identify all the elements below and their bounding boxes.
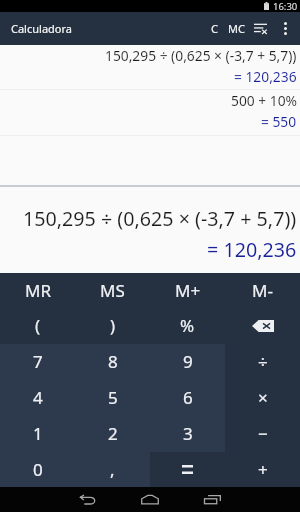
staticText: × bbox=[258, 386, 268, 409]
button[interactable]: 6 bbox=[150, 379, 225, 415]
staticText: M+ bbox=[175, 279, 201, 302]
button[interactable]: , bbox=[75, 451, 150, 487]
button[interactable]: 8 bbox=[75, 343, 150, 379]
button[interactable]: M- bbox=[225, 273, 300, 308]
button[interactable]: 9 bbox=[150, 343, 225, 379]
button[interactable]: 150,295 ÷ (0,625 × (-3,7 + 5,7)) bbox=[0, 45, 300, 89]
staticText: MC bbox=[228, 21, 245, 36]
button[interactable]: 3 bbox=[150, 415, 225, 451]
staticText: MS bbox=[100, 279, 125, 302]
staticText: = 550 bbox=[261, 112, 297, 131]
staticText: 6 bbox=[183, 386, 193, 409]
staticText: 5 bbox=[108, 386, 118, 409]
button[interactable]: % bbox=[150, 308, 225, 343]
button[interactable]: 1 bbox=[0, 415, 75, 451]
staticText: 2 bbox=[108, 422, 118, 445]
button[interactable]: ) bbox=[75, 308, 150, 343]
button[interactable]: ( bbox=[0, 308, 75, 343]
staticText: 0 bbox=[33, 458, 43, 481]
button[interactable]: Back bbox=[57, 487, 119, 512]
staticText: , bbox=[110, 458, 115, 481]
staticText: ( bbox=[35, 314, 41, 337]
staticText: 16:30 bbox=[273, 0, 298, 12]
staticText: 150,295 ÷ (0,625 × (-3,7 + 5,7)) bbox=[105, 46, 297, 65]
button[interactable]: Recents bbox=[181, 487, 243, 512]
staticText: 4 bbox=[33, 386, 43, 409]
button[interactable]: MS bbox=[75, 273, 150, 308]
button[interactable]: Home bbox=[119, 487, 181, 512]
button[interactable]: MC bbox=[224, 12, 248, 45]
button[interactable]: MR bbox=[0, 273, 75, 308]
staticText: 9 bbox=[183, 350, 193, 373]
staticText: 500 + 10% bbox=[231, 91, 297, 110]
button[interactable]: 4 bbox=[0, 379, 75, 415]
staticText: MR bbox=[25, 279, 51, 302]
button[interactable] bbox=[150, 451, 225, 487]
staticText: ÷ bbox=[258, 350, 268, 373]
button[interactable]: × bbox=[225, 379, 300, 415]
staticText: 1 bbox=[33, 422, 43, 445]
staticText: ) bbox=[110, 314, 116, 337]
staticText: + bbox=[258, 458, 268, 481]
button[interactable]: 500 + 10% bbox=[0, 90, 300, 135]
button[interactable]: ÷ bbox=[225, 343, 300, 379]
button[interactable] bbox=[225, 308, 300, 343]
staticText: 7 bbox=[33, 350, 43, 373]
staticText: 8 bbox=[108, 350, 118, 373]
button[interactable]: C bbox=[204, 12, 224, 45]
staticText: − bbox=[258, 422, 268, 445]
button[interactable]: 7 bbox=[0, 343, 75, 379]
button[interactable]: 2 bbox=[75, 415, 150, 451]
staticText: 150,295 ÷ (0,625 × (-3,7 + 5,7)) bbox=[23, 205, 297, 232]
staticText: = 120,236 bbox=[234, 67, 297, 86]
staticText: M- bbox=[252, 279, 273, 302]
staticText: = 120,236 bbox=[207, 236, 297, 263]
staticText: C bbox=[211, 21, 218, 36]
button[interactable]: + bbox=[225, 451, 300, 487]
button[interactable]: − bbox=[225, 415, 300, 451]
staticText: % bbox=[180, 314, 195, 337]
button[interactable]: M+ bbox=[150, 273, 225, 308]
button[interactable]: 5 bbox=[75, 379, 150, 415]
button[interactable]: More options bbox=[272, 12, 298, 45]
staticText: Calculadora bbox=[11, 21, 72, 36]
button[interactable]: 0 bbox=[0, 451, 75, 487]
staticText: 3 bbox=[183, 422, 193, 445]
button[interactable]: Clear history bbox=[248, 12, 272, 45]
